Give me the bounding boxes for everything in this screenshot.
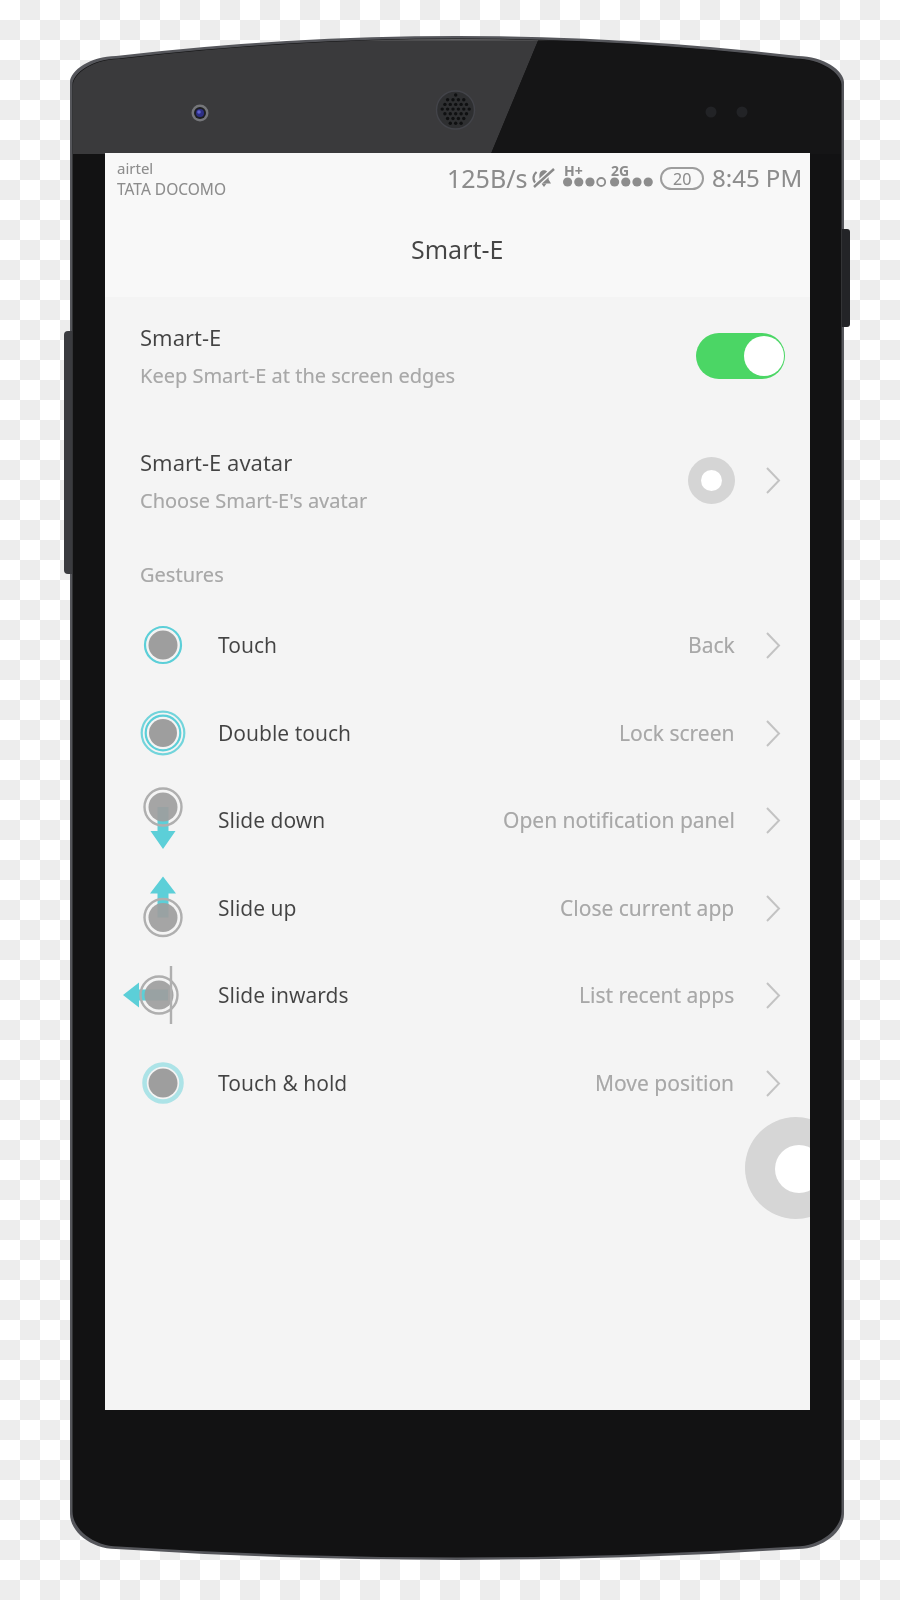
staticText: Smart-E bbox=[411, 232, 504, 266]
staticText: Slide up bbox=[218, 894, 297, 923]
staticText: Keep Smart-E at the screen edges bbox=[140, 362, 456, 389]
button[interactable]: Smart-E avatar bbox=[105, 428, 810, 533]
staticText: Gestures bbox=[140, 561, 224, 588]
staticText: 2G bbox=[611, 161, 630, 180]
staticText: Slide inwards bbox=[218, 981, 349, 1010]
staticText: Touch bbox=[218, 631, 277, 660]
button[interactable]: Double touch bbox=[105, 689, 810, 777]
staticText: Smart-E avatar bbox=[140, 447, 293, 477]
button[interactable]: Slide inwards bbox=[105, 951, 810, 1039]
staticText: Open notification panel bbox=[503, 806, 735, 835]
staticText: 125B/s bbox=[447, 161, 528, 195]
button[interactable]: Smart-E bbox=[105, 303, 810, 408]
button[interactable]: Touch bbox=[105, 601, 810, 689]
staticText: Choose Smart-E's avatar bbox=[140, 487, 368, 514]
staticText: Double touch bbox=[218, 719, 351, 748]
button[interactable]: Smart-E floating bubble bbox=[745, 1117, 810, 1219]
staticText: TATA DOCOMO bbox=[117, 178, 226, 199]
button[interactable]: Slide down bbox=[105, 776, 810, 864]
button[interactable]: Toggle Smart-E on bbox=[696, 333, 785, 379]
staticText: Smart-E bbox=[140, 322, 222, 352]
staticText: Touch & hold bbox=[218, 1069, 348, 1098]
staticText: Lock screen bbox=[619, 719, 735, 748]
staticText: airtel bbox=[117, 158, 154, 178]
staticText: 20 bbox=[673, 168, 692, 189]
staticText: Move position bbox=[595, 1069, 735, 1098]
button[interactable]: Touch & hold bbox=[105, 1039, 810, 1127]
staticText: Close current app bbox=[560, 894, 735, 923]
staticText: Slide down bbox=[218, 806, 326, 835]
staticText: List recent apps bbox=[579, 981, 735, 1010]
staticText: H+ bbox=[564, 161, 583, 180]
staticText: 8:45 PM bbox=[712, 161, 803, 194]
button[interactable]: Slide up bbox=[105, 864, 810, 952]
staticText: Back bbox=[688, 631, 735, 660]
